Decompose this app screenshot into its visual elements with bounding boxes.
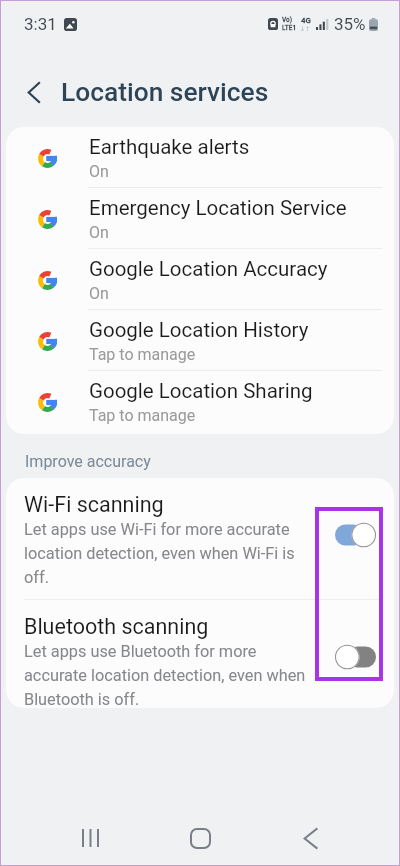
staticText: Earthquake alerts	[89, 135, 250, 159]
staticText: Tap to manage	[89, 406, 196, 425]
button[interactable]: Wi-Fi scanning	[6, 478, 394, 600]
button[interactable]: Google Location History	[6, 310, 394, 371]
button[interactable]: Back	[14, 66, 54, 118]
staticText: Location services	[61, 77, 269, 108]
staticText: Emergency Location Service	[89, 196, 347, 220]
button[interactable]: Wi-Fi scanning on	[335, 522, 376, 548]
staticText: On	[89, 284, 109, 303]
button[interactable]: Google Location Accuracy	[6, 249, 394, 310]
button[interactable]: Home	[158, 805, 243, 866]
staticText: On	[89, 162, 109, 181]
staticText: Bluetooth scanning	[24, 614, 209, 639]
button[interactable]: Back	[268, 805, 353, 866]
staticText: Wi-Fi scanning	[24, 492, 164, 517]
staticText: Google Location Accuracy	[89, 257, 328, 281]
button[interactable]: Bluetooth scanning off	[335, 644, 376, 670]
staticText: 3:31	[24, 14, 57, 34]
staticText: Tap to manage	[89, 345, 196, 364]
button[interactable]: Recents	[48, 805, 133, 866]
staticText: Google Location History	[89, 318, 309, 342]
staticText: 4G	[301, 16, 311, 25]
staticText: On	[89, 223, 109, 242]
staticText: Vo)	[282, 16, 293, 24]
staticText: Google Location Sharing	[89, 379, 313, 403]
button[interactable]: Google Location Sharing	[6, 371, 394, 432]
staticText: LTE1	[282, 24, 297, 32]
button[interactable]: Bluetooth scanning	[6, 600, 394, 708]
staticText: 35%	[334, 14, 366, 34]
staticText: ↓↑	[300, 25, 311, 32]
button[interactable]: Emergency Location Service	[6, 188, 394, 249]
button[interactable]: Earthquake alerts	[6, 127, 394, 188]
staticText: Let apps use Wi-Fi for more accurate loc…	[24, 520, 308, 587]
staticText: Let apps use Bluetooth for more accurate…	[24, 642, 308, 708]
staticText: Improve accuracy	[25, 452, 151, 471]
